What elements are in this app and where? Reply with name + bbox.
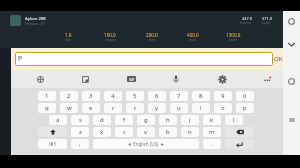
staticText: Premium - 01 xyxy=(25,22,45,26)
button[interactable]: a xyxy=(49,115,67,125)
button[interactable]: v xyxy=(137,127,155,137)
staticText: OK xyxy=(274,55,283,63)
staticText: 100.0 xyxy=(104,32,116,38)
button[interactable]: Hide keyboard xyxy=(284,37,299,52)
button[interactable]: m xyxy=(203,127,221,137)
button[interactable]: w xyxy=(60,103,78,113)
button[interactable]: More options xyxy=(259,71,275,87)
button[interactable]: 9 xyxy=(214,91,232,101)
button[interactable]: Settings xyxy=(214,71,230,87)
button[interactable]: y xyxy=(148,103,166,113)
button[interactable]: Emoji xyxy=(32,71,48,87)
staticText: j xyxy=(189,116,191,124)
button[interactable]: , xyxy=(71,139,89,149)
button[interactable]: 6 xyxy=(148,91,166,101)
staticText: . xyxy=(211,140,213,148)
button[interactable]: . xyxy=(203,139,221,149)
staticText: 9 xyxy=(221,92,225,100)
staticText: a xyxy=(56,116,60,124)
staticText: s xyxy=(79,116,82,124)
button[interactable]: c xyxy=(115,127,133,137)
button[interactable]: u xyxy=(170,103,188,113)
staticText: w xyxy=(67,104,72,112)
button[interactable]: Voice input xyxy=(168,71,184,87)
staticText: 8 xyxy=(199,92,203,100)
staticText: g xyxy=(144,116,148,124)
staticText: r xyxy=(112,104,115,112)
button[interactable]: i xyxy=(192,103,210,113)
button[interactable]: 0 xyxy=(236,91,254,101)
staticText: y xyxy=(155,104,159,112)
staticText: o xyxy=(221,104,225,112)
button[interactable]: 2 xyxy=(60,91,78,101)
staticText: f xyxy=(123,116,126,124)
staticText: 4 xyxy=(111,92,115,100)
staticText: level xyxy=(189,38,196,42)
staticText: e xyxy=(89,104,93,112)
button[interactable]: f xyxy=(115,115,133,125)
staticText: 5 xyxy=(133,92,137,100)
staticText: m xyxy=(209,128,215,136)
button[interactable]: 4 xyxy=(104,91,122,101)
staticText: q xyxy=(45,104,49,112)
staticText: 6 xyxy=(155,92,159,100)
button[interactable]: o xyxy=(214,103,232,113)
button[interactable]: 1 xyxy=(38,91,56,101)
staticText: x xyxy=(100,128,104,136)
staticText: l xyxy=(233,116,235,124)
staticText: h xyxy=(166,116,170,124)
button[interactable]: z xyxy=(71,127,89,137)
button[interactable]: space xyxy=(93,139,199,149)
staticText: English (US) xyxy=(133,141,159,147)
staticText: 400.0 xyxy=(187,32,199,38)
button[interactable]: d xyxy=(93,115,111,125)
button[interactable]: n xyxy=(181,127,199,137)
button[interactable]: l xyxy=(225,115,243,125)
button[interactable]: t xyxy=(126,103,144,113)
staticText: 447.0 xyxy=(242,16,252,21)
button[interactable]: p xyxy=(236,103,254,113)
button[interactable]: 3 xyxy=(82,91,100,101)
staticText: 2 xyxy=(67,92,71,100)
staticText: k xyxy=(210,116,214,124)
button[interactable]: del xyxy=(225,127,254,137)
staticText: n xyxy=(188,128,192,136)
staticText: t xyxy=(134,104,137,112)
button[interactable]: s xyxy=(71,115,89,125)
staticText: 3 xyxy=(89,92,93,100)
button[interactable]: g xyxy=(137,115,155,125)
button[interactable]: 5 xyxy=(126,91,144,101)
staticText: lots xyxy=(65,38,71,42)
button[interactable]: enter xyxy=(225,139,254,149)
button[interactable]: shift xyxy=(38,127,67,137)
staticText: 0 xyxy=(243,92,247,100)
staticText: , xyxy=(79,140,81,148)
staticText: z xyxy=(79,128,82,136)
button[interactable]: q xyxy=(38,103,56,113)
button[interactable]: e xyxy=(82,103,100,113)
staticText: 200.0 xyxy=(146,32,158,38)
button[interactable]: Menu xyxy=(284,14,299,29)
staticText: !#1 xyxy=(49,141,57,148)
button[interactable]: h xyxy=(159,115,177,125)
button[interactable]: 7 xyxy=(170,91,188,101)
button[interactable]: Home xyxy=(284,74,299,89)
button[interactable]: !#1 xyxy=(38,139,67,149)
button[interactable]: GIF xyxy=(123,71,139,87)
button[interactable]: Account avatar xyxy=(10,15,21,26)
button[interactable]: Stickers xyxy=(77,71,93,87)
button[interactable]: P xyxy=(15,52,273,66)
staticText: 1.0 xyxy=(65,32,72,38)
button[interactable]: x xyxy=(93,127,111,137)
staticText: Aykon 288 xyxy=(25,16,46,22)
staticText: 7 xyxy=(177,92,181,100)
button[interactable]: b xyxy=(159,127,177,137)
button[interactable]: 8 xyxy=(192,91,210,101)
button[interactable]: k xyxy=(203,115,221,125)
button[interactable]: j xyxy=(181,115,199,125)
staticText: P xyxy=(18,54,23,64)
button[interactable]: OK xyxy=(273,48,283,70)
staticText: equity xyxy=(262,21,272,25)
button[interactable]: Recent apps xyxy=(284,112,299,127)
button[interactable]: r xyxy=(104,103,122,113)
